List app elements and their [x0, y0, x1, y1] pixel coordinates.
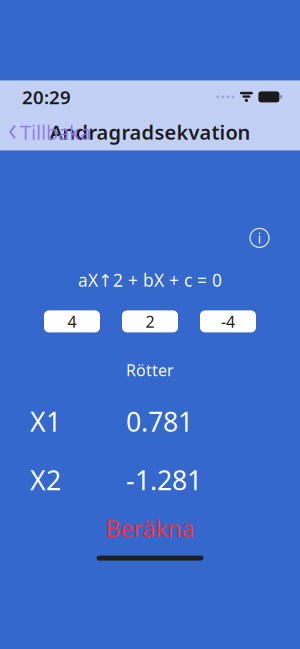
- button[interactable]: Beräkna: [87, 509, 212, 548]
- staticText: -1.281: [126, 462, 202, 497]
- staticText: 2: [145, 311, 154, 332]
- staticText: 0.781: [126, 404, 193, 439]
- staticText: Rötter: [126, 359, 174, 381]
- button[interactable]: 2: [122, 310, 178, 332]
- staticText: Andragradsekvation: [49, 119, 250, 145]
- button[interactable]: Tillbaka: [0, 113, 91, 151]
- staticText: Beräkna: [105, 513, 194, 544]
- staticText: -4: [221, 311, 235, 332]
- button[interactable]: Information: [250, 228, 269, 247]
- staticText: X2: [30, 462, 61, 497]
- staticText: 4: [67, 311, 76, 332]
- staticText: aX↑2 + bX + c = 0: [78, 268, 222, 291]
- button[interactable]: -4: [200, 310, 256, 332]
- staticText: Tillbaka: [20, 119, 91, 145]
- button[interactable]: 4: [44, 310, 100, 332]
- staticText: 20:29: [22, 84, 71, 109]
- staticText: i: [257, 228, 261, 248]
- staticText: X1: [30, 404, 61, 439]
